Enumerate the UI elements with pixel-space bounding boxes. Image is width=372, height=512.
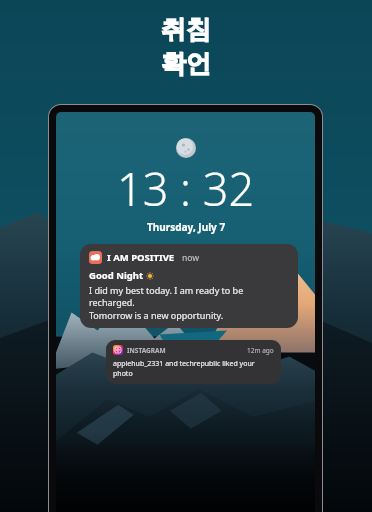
- staticText: Good Night: [89, 269, 146, 282]
- staticText: 13 : 32: [117, 158, 255, 219]
- staticText: Thursday, July 7: [147, 220, 226, 234]
- staticText: 취침: [161, 14, 211, 45]
- staticText: 확언: [161, 48, 211, 79]
- staticText: 12m ago: [247, 346, 274, 355]
- staticText: applehub_2331 and techrepublic liked you…: [113, 359, 274, 379]
- button[interactable]: INSTAGRAM: [106, 340, 281, 384]
- staticText: INSTAGRAM: [127, 346, 166, 355]
- staticText: now: [182, 252, 200, 264]
- staticText: I AM POSITIVE: [107, 251, 175, 264]
- staticText: I did my best today. I am ready to be re…: [89, 284, 289, 308]
- other: Moon: [176, 138, 196, 158]
- staticText: Tomorrow is a new opportunity.: [89, 309, 224, 321]
- button[interactable]: I AM POSITIVE: [80, 244, 298, 328]
